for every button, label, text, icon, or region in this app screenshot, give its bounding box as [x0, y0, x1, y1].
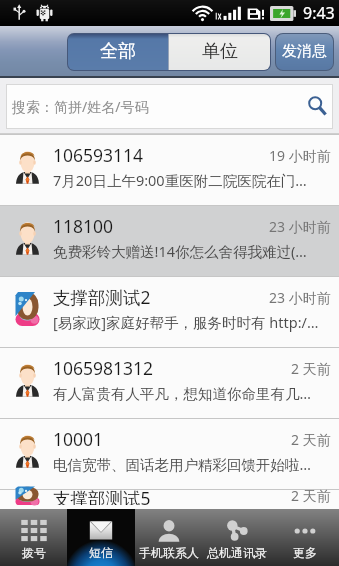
staticText: 总机通讯录 [207, 545, 267, 560]
staticText: 2 天前 [291, 359, 331, 378]
staticText: 19 小时前 [269, 146, 331, 165]
button[interactable]: 短信 [67, 509, 135, 566]
staticText: 手机联系人 [139, 545, 199, 560]
staticText: 23 小时前 [269, 217, 331, 236]
button[interactable]: 拨号 [0, 509, 67, 566]
staticText: 搜索：简拼/姓名/号码 [12, 97, 149, 116]
button[interactable]: 手机联系人 [135, 509, 203, 566]
button[interactable]: 更多 [271, 509, 339, 566]
staticText: 全部 [100, 40, 136, 63]
staticText: 拨号 [22, 545, 46, 560]
staticText: 23 小时前 [269, 288, 331, 307]
staticText: 118100 [53, 214, 114, 238]
staticText: [易家政]家庭好帮手，服务时时有 http:/… [53, 312, 319, 332]
staticText: 2 天前 [291, 486, 331, 505]
staticText: 单位 [202, 40, 238, 63]
button[interactable]: 全部 [68, 34, 168, 70]
staticText: 9:43 [303, 2, 335, 24]
button[interactable]: 总机通讯录 [203, 509, 271, 566]
button[interactable]: 118100 [0, 206, 339, 276]
staticText: 有人富贵有人平凡，想知道你命里有几… [53, 383, 311, 403]
staticText: 短信 [89, 545, 113, 560]
staticText: 发消息 [282, 42, 327, 61]
button[interactable]: 1065981312 [0, 348, 339, 418]
button[interactable]: 支撑部测试2 [0, 277, 339, 347]
button[interactable]: 单位 [169, 34, 270, 70]
staticText: 支撑部测试5 [53, 486, 151, 505]
staticText: 免费彩铃大赠送!14你怎么舍得我难过(… [53, 241, 307, 261]
staticText: 106593114 [53, 143, 144, 167]
button[interactable]: 106593114 [0, 135, 339, 205]
staticText: 电信宽带、固话老用户精彩回馈开始啦… [53, 454, 311, 474]
button[interactable]: 支撑部测试5 [0, 490, 339, 509]
staticText: 2 天前 [291, 430, 331, 449]
button[interactable]: 10001 [0, 419, 339, 489]
staticText: 支撑部测试2 [53, 285, 151, 309]
other: Search [308, 97, 328, 116]
staticText: 10001 [53, 427, 104, 451]
staticText: 1065981312 [53, 356, 154, 380]
staticText: 更多 [293, 545, 317, 560]
button[interactable]: 发消息 [276, 34, 333, 70]
staticText: 7月20日上午9:00重医附二院医院在门… [53, 170, 307, 190]
button[interactable]: 搜索：简拼/姓名/号码 [6, 84, 333, 129]
